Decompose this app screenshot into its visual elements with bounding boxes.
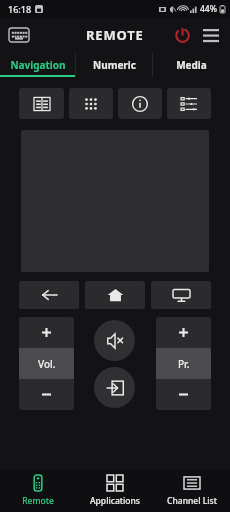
- staticText: Numeric: [93, 58, 136, 72]
- staticText: Navigation: [10, 58, 66, 72]
- staticText: Vol.: [38, 357, 56, 371]
- button[interactable]: Menu: [198, 24, 224, 47]
- button[interactable]: Applications: [76, 470, 153, 512]
- staticText: 44%: [200, 3, 217, 15]
- button[interactable]: Source: [151, 281, 211, 309]
- button[interactable]: Channel List: [153, 470, 230, 512]
- button[interactable]: Home: [85, 281, 145, 309]
- button[interactable]: Vol. down: [19, 379, 74, 410]
- button[interactable]: Numeric: [76, 52, 153, 77]
- button[interactable]: Media: [153, 52, 230, 77]
- button[interactable]: Input: [94, 367, 135, 408]
- button[interactable]: Navigation: [0, 52, 76, 77]
- button[interactable]: Guide: [19, 88, 64, 119]
- button[interactable]: Pr. up: [156, 317, 211, 348]
- staticText: Applications: [90, 495, 140, 507]
- button[interactable]: Keypad: [69, 88, 113, 119]
- staticText: REMOTE: [86, 26, 144, 44]
- button[interactable]: Vol.: [19, 348, 74, 379]
- staticText: Remote: [22, 495, 54, 507]
- staticText: 16:18: [8, 3, 32, 15]
- staticText: Media: [176, 58, 207, 72]
- button[interactable]: Pr.: [156, 348, 211, 379]
- staticText: Pr.: [178, 357, 190, 371]
- button[interactable]: Vol. up: [19, 317, 74, 348]
- button[interactable]: Keyboard: [7, 26, 31, 44]
- button[interactable]: Back: [19, 281, 79, 309]
- button[interactable]: Mute: [94, 320, 135, 361]
- button[interactable]: Info: [118, 88, 162, 119]
- button[interactable]: Remote: [0, 470, 76, 512]
- staticText: Channel List: [167, 495, 217, 507]
- button[interactable]: Power: [170, 23, 195, 48]
- button[interactable]: Options: [167, 88, 211, 119]
- button[interactable]: Pr. down: [156, 379, 211, 410]
